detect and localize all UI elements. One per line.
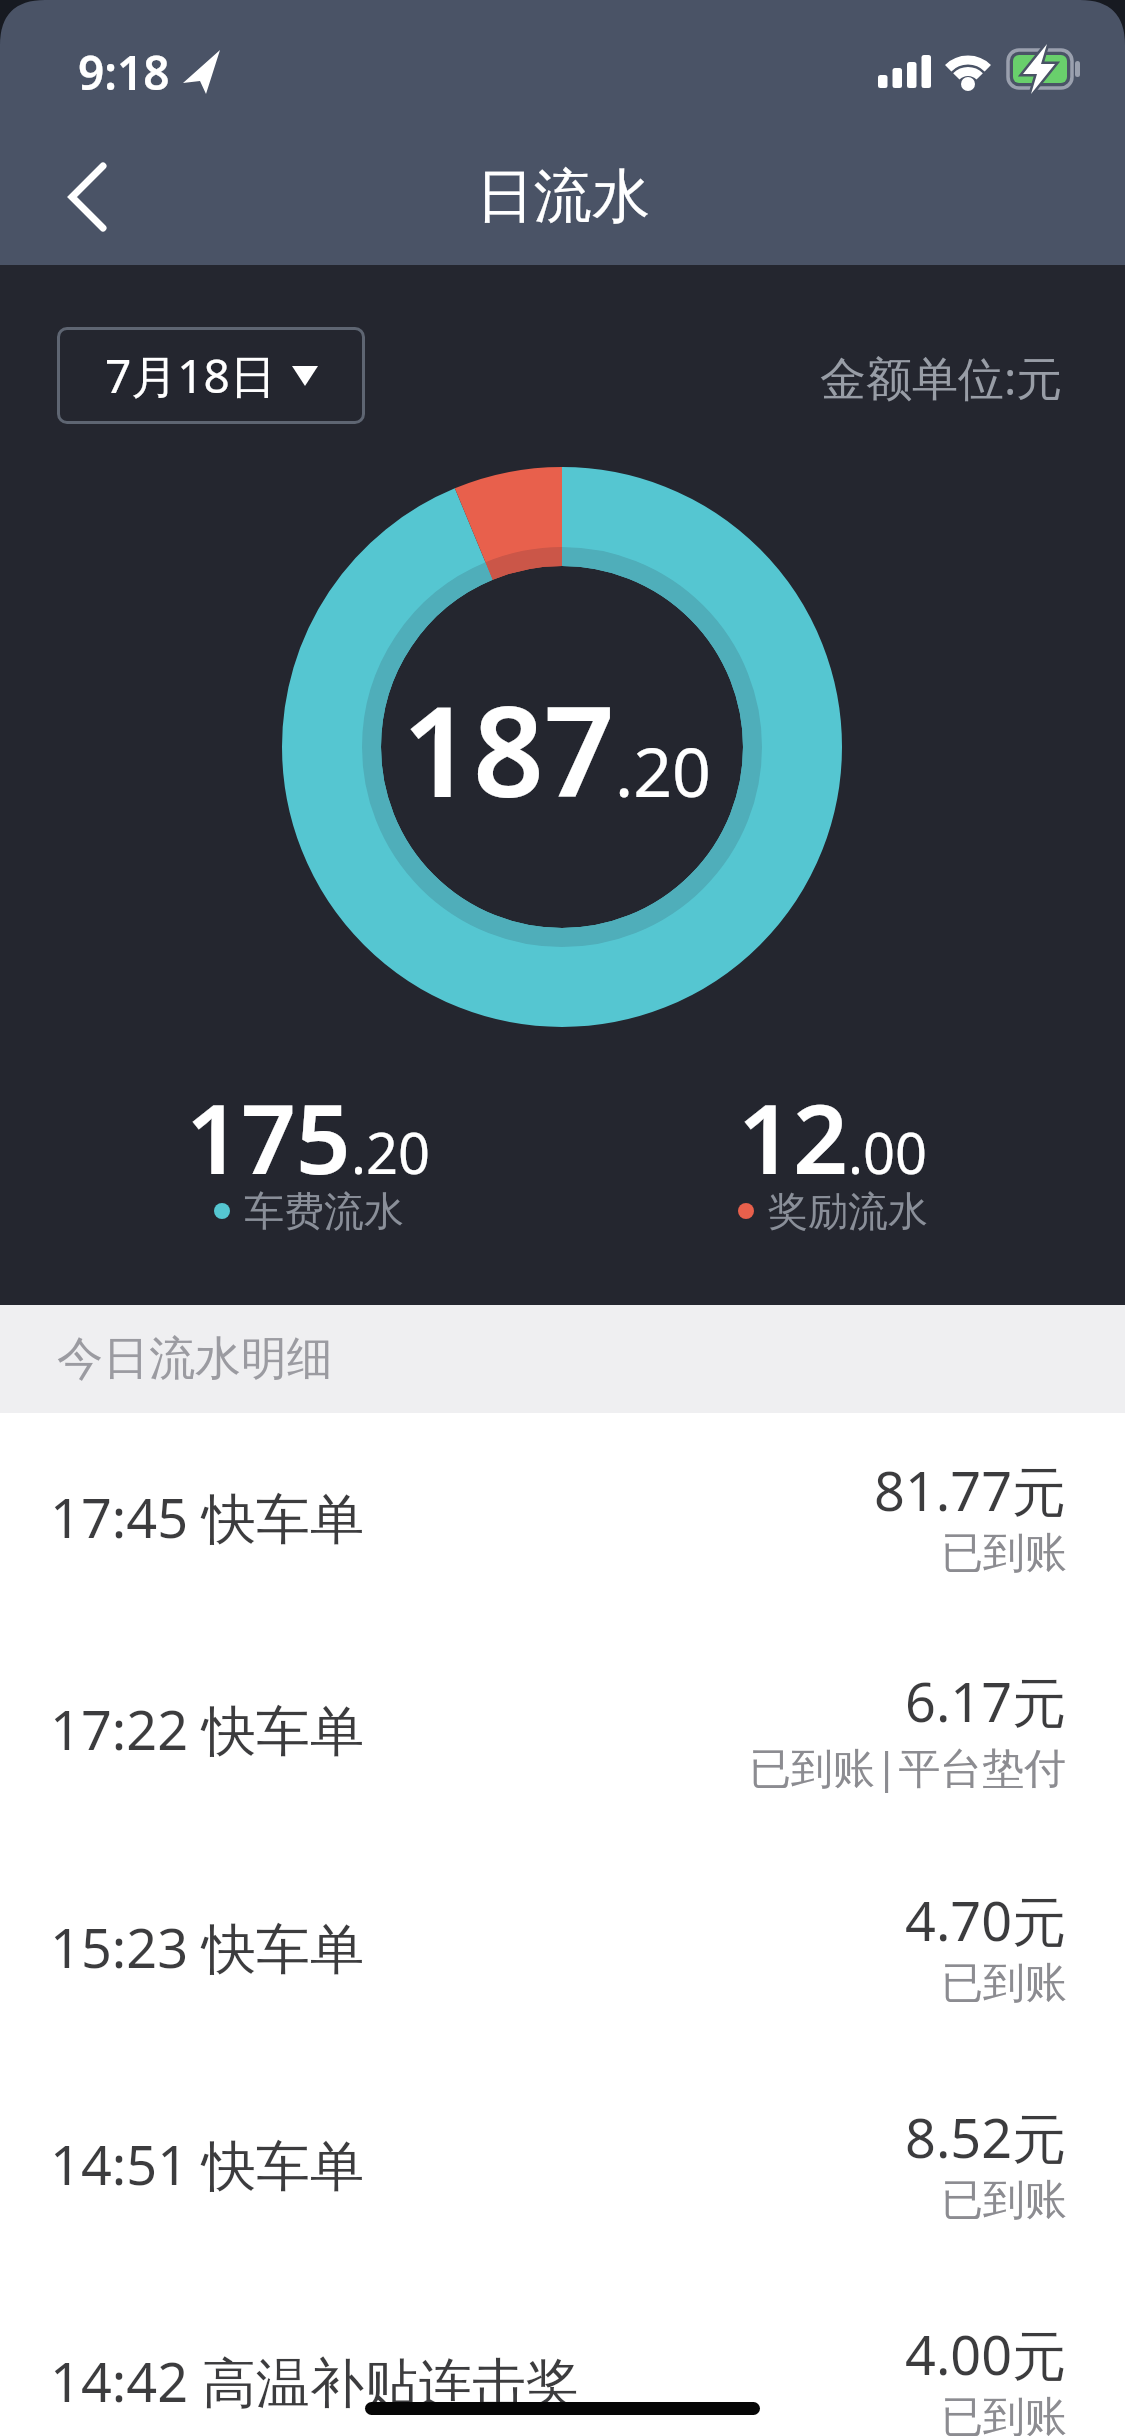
staticText: 175: [186, 1071, 351, 1202]
staticText: 9:18: [78, 41, 170, 104]
staticText: 金额单位:元: [820, 346, 1063, 409]
staticText: 4.00元: [905, 2317, 1067, 2391]
staticText: 81.77元: [874, 1453, 1067, 1527]
staticText: 4.70元: [905, 1883, 1067, 1957]
button[interactable]: 15:23 快车单: [0, 1838, 1125, 2055]
staticText: 车费流水: [244, 1186, 404, 1236]
staticText: 12: [738, 1071, 848, 1202]
staticText: 6.17元: [905, 1664, 1067, 1738]
staticText: 今日流水明细: [57, 1330, 333, 1388]
button[interactable]: 17:45 快车单: [0, 1413, 1125, 1620]
staticText: 15:23 快车单: [50, 1910, 365, 1984]
staticText: .00: [848, 1114, 928, 1190]
staticText: 14:51 快车单: [50, 2127, 365, 2201]
button[interactable]: [40, 140, 130, 250]
staticText: 8.52元: [905, 2100, 1067, 2174]
staticText: 已到账: [941, 1527, 1067, 1580]
staticText: 已到账|平台垫付: [749, 1738, 1067, 1795]
staticText: 日流水: [476, 160, 650, 233]
staticText: 17:22 快车单: [50, 1692, 365, 1766]
staticText: .20: [615, 724, 712, 817]
staticText: 已到账: [941, 1957, 1067, 2010]
button[interactable]: 14:42 高温补贴连击奖: [0, 2272, 1125, 2436]
staticText: 奖励流水: [768, 1186, 928, 1236]
staticText: 7月18日: [105, 344, 276, 407]
button[interactable]: 17:22 快车单: [0, 1620, 1125, 1838]
staticText: 17:45 快车单: [50, 1480, 365, 1554]
staticText: 14:42 高温补贴连击奖: [50, 2344, 581, 2418]
staticText: 187: [402, 664, 615, 833]
staticText: 已到账: [941, 2391, 1067, 2436]
staticText: .20: [351, 1114, 431, 1190]
staticText: 已到账: [941, 2174, 1067, 2227]
button[interactable]: 14:51 快车单: [0, 2055, 1125, 2272]
button[interactable]: 7月18日: [57, 327, 365, 424]
